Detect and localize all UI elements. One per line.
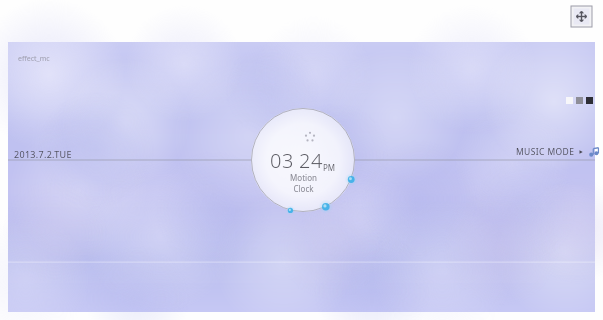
staticText: 03 — [270, 147, 294, 174]
staticText: effect_mc — [18, 54, 50, 64]
button[interactable]: Motion Clock — [251, 108, 355, 212]
staticText: Motion — [290, 172, 317, 183]
button[interactable]: Toggle fullscreen — [571, 6, 592, 27]
staticText: Clock — [293, 183, 314, 194]
staticText: 2013.7.2.TUE — [14, 148, 72, 160]
staticText: PM — [323, 162, 336, 173]
button[interactable]: 2013.7.2.TUE — [14, 148, 72, 160]
staticText: 24 — [299, 147, 323, 174]
staticText: MUSIC MODE — [516, 146, 575, 158]
other: Music mode — [588, 146, 600, 158]
button[interactable]: MUSIC MODE — [516, 146, 600, 158]
